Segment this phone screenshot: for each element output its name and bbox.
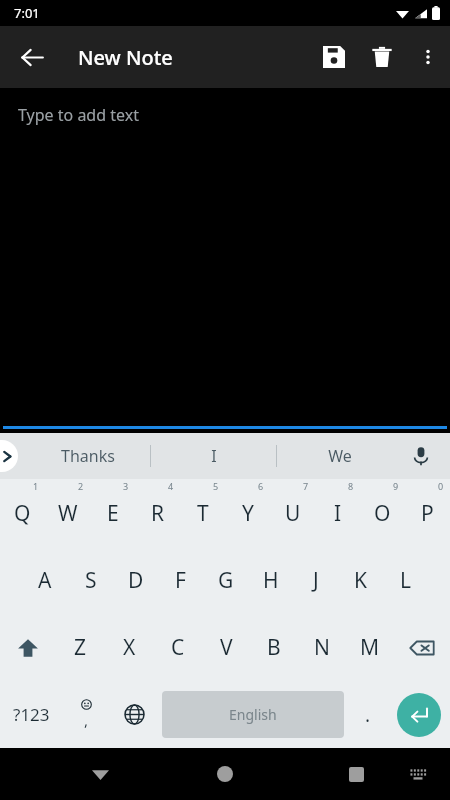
staticText: W: [58, 499, 78, 528]
button[interactable]: Emoji: [62, 681, 110, 748]
staticText: 1: [33, 480, 39, 492]
staticText: Q: [14, 499, 31, 528]
staticText: H: [263, 566, 279, 595]
button[interactable]: E: [90, 479, 135, 547]
button[interactable]: .: [348, 681, 388, 748]
button[interactable]: Y: [225, 479, 270, 547]
staticText: D: [128, 566, 144, 595]
button[interactable]: H: [248, 547, 293, 614]
staticText: .: [365, 702, 371, 728]
button[interactable]: F: [158, 547, 203, 614]
staticText: G: [218, 566, 234, 595]
staticText: Thanks: [61, 445, 115, 467]
button[interactable]: D: [113, 547, 158, 614]
button[interactable]: G: [203, 547, 248, 614]
button[interactable]: Back: [8, 33, 56, 81]
staticText: 0: [438, 480, 444, 492]
staticText: U: [285, 499, 301, 528]
staticText: L: [400, 566, 412, 595]
staticText: 3: [123, 480, 129, 492]
button[interactable]: Change language: [110, 681, 158, 748]
button[interactable]: U: [270, 479, 315, 547]
staticText: J: [313, 566, 319, 595]
button[interactable]: Hide keyboard: [78, 752, 122, 796]
button[interactable]: L: [383, 547, 428, 614]
staticText: F: [175, 566, 186, 595]
staticText: 4: [168, 480, 174, 492]
button[interactable]: More options: [406, 35, 450, 79]
button[interactable]: V: [202, 614, 250, 681]
button[interactable]: Delete: [358, 33, 406, 81]
staticText: Type to add text: [18, 104, 139, 126]
button[interactable]: S: [68, 547, 113, 614]
button[interactable]: W: [45, 479, 90, 547]
staticText: 6: [258, 480, 264, 492]
button[interactable]: Home: [203, 752, 247, 796]
button[interactable]: J: [293, 547, 338, 614]
button[interactable]: Voice input: [402, 437, 440, 475]
staticText: T: [197, 499, 209, 528]
staticText: ?123: [13, 703, 50, 726]
button[interactable]: Thanks: [26, 433, 150, 479]
button[interactable]: ?123: [0, 681, 62, 748]
staticText: A: [38, 566, 52, 595]
button[interactable]: Z: [56, 614, 105, 681]
button[interactable]: P: [405, 479, 450, 547]
button[interactable]: Backspace: [394, 614, 450, 681]
button[interactable]: Q: [0, 479, 45, 547]
button[interactable]: English: [162, 691, 344, 738]
button[interactable]: Shift: [0, 614, 56, 681]
staticText: M: [360, 633, 380, 662]
button[interactable]: Enter: [388, 681, 450, 748]
button[interactable]: We: [277, 433, 402, 479]
staticText: P: [421, 499, 434, 528]
button[interactable]: Type to add text: [0, 88, 450, 433]
staticText: I: [334, 499, 342, 528]
staticText: R: [151, 499, 165, 528]
button[interactable]: I: [315, 479, 360, 547]
button[interactable]: O: [360, 479, 405, 547]
staticText: 7:01: [14, 4, 40, 22]
button[interactable]: B: [250, 614, 298, 681]
button[interactable]: C: [154, 614, 202, 681]
button[interactable]: Recent apps: [334, 752, 378, 796]
staticText: O: [374, 499, 391, 528]
staticText: 9: [393, 480, 399, 492]
staticText: New Note: [78, 44, 173, 71]
staticText: 7: [303, 480, 309, 492]
staticText: N: [314, 633, 330, 662]
staticText: 5: [213, 480, 219, 492]
staticText: C: [171, 633, 185, 662]
staticText: V: [220, 633, 233, 662]
staticText: Y: [242, 499, 254, 528]
staticText: Z: [74, 633, 87, 662]
button[interactable]: I: [151, 433, 276, 479]
button[interactable]: X: [105, 614, 154, 681]
staticText: 8: [348, 480, 354, 492]
staticText: 2: [78, 480, 84, 492]
button[interactable]: R: [135, 479, 180, 547]
staticText: I: [211, 445, 217, 467]
staticText: K: [354, 566, 367, 595]
button[interactable]: Switch keyboard: [398, 754, 438, 794]
button[interactable]: K: [338, 547, 383, 614]
staticText: S: [85, 566, 97, 595]
staticText: X: [123, 633, 136, 662]
staticText: English: [229, 705, 277, 724]
button[interactable]: A: [22, 547, 68, 614]
button[interactable]: Save: [310, 33, 358, 81]
staticText: B: [267, 633, 281, 662]
staticText: E: [107, 499, 119, 528]
button[interactable]: N: [298, 614, 346, 681]
button[interactable]: More suggestions: [0, 440, 18, 472]
button[interactable]: T: [180, 479, 225, 547]
staticText: We: [328, 445, 352, 467]
button[interactable]: M: [346, 614, 394, 681]
staticText: ,: [84, 710, 89, 730]
